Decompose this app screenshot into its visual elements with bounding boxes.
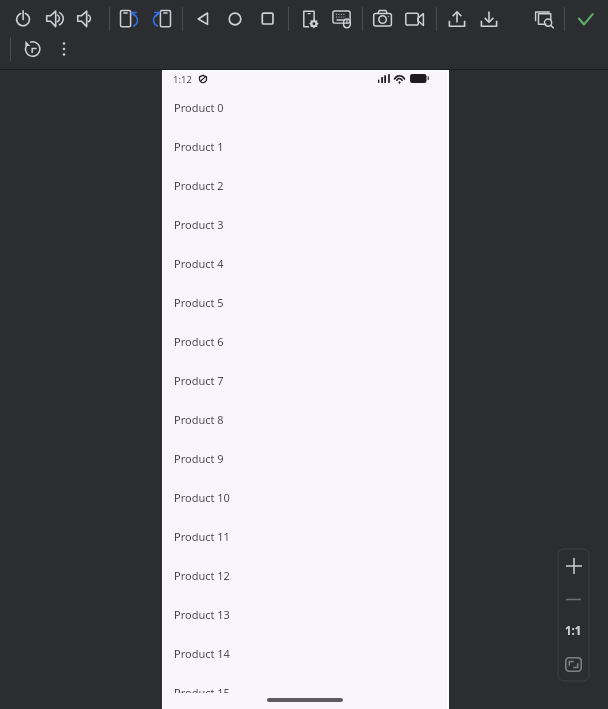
staticText: Product 10 <box>174 490 230 505</box>
staticText: Product 1 <box>174 139 224 154</box>
button[interactable]: Product 15 <box>163 673 447 693</box>
button[interactable]: Power <box>12 9 34 31</box>
staticText: Product 14 <box>174 646 230 661</box>
button[interactable]: Product 13 <box>163 595 447 634</box>
button[interactable]: History <box>21 38 43 60</box>
button[interactable]: Home <box>224 9 246 31</box>
button[interactable]: Product 0 <box>163 88 447 127</box>
button[interactable]: Product 6 <box>163 322 447 361</box>
staticText: Product 7 <box>174 373 224 388</box>
button[interactable]: Record screen <box>404 9 426 31</box>
button[interactable]: Product 8 <box>163 400 447 439</box>
button[interactable]: Inspect layout <box>535 9 557 31</box>
button[interactable]: Confirm <box>575 9 597 31</box>
button[interactable]: Product 12 <box>163 556 447 595</box>
button[interactable]: Rotate right <box>151 9 173 31</box>
staticText: Product 4 <box>174 256 224 271</box>
button[interactable]: Rotate left <box>118 9 140 31</box>
button[interactable]: Product 3 <box>163 205 447 244</box>
button[interactable]: Upload file <box>446 9 468 31</box>
staticText: Product 2 <box>174 178 224 193</box>
button[interactable]: Keyboard and mouse <box>331 9 353 31</box>
button[interactable]: Overview <box>256 9 278 31</box>
button[interactable]: Fit to window <box>558 647 589 681</box>
staticText: Product 9 <box>174 451 224 466</box>
button[interactable]: Product 7 <box>163 361 447 400</box>
button[interactable]: Product 4 <box>163 244 447 283</box>
staticText: Product 13 <box>174 607 230 622</box>
button[interactable]: More options <box>53 38 75 60</box>
staticText: Product 11 <box>174 529 230 544</box>
button[interactable]: Zoom in <box>558 549 589 583</box>
button[interactable]: Zoom out <box>558 583 589 615</box>
button[interactable]: Volume up <box>44 9 66 31</box>
button[interactable]: Product 9 <box>163 439 447 478</box>
staticText: Product 5 <box>174 295 224 310</box>
button[interactable]: Product 14 <box>163 634 447 673</box>
button[interactable]: Product 2 <box>163 166 447 205</box>
button[interactable]: Product 1 <box>163 127 447 166</box>
staticText: Product 6 <box>174 334 224 349</box>
button[interactable]: Device settings <box>300 9 322 31</box>
button[interactable]: Product 11 <box>163 517 447 556</box>
staticText: Product 3 <box>174 217 224 232</box>
staticText: 1:12 <box>173 73 192 86</box>
button[interactable]: Download file <box>478 9 500 31</box>
staticText: Product 15 <box>174 685 230 693</box>
button[interactable]: Volume down <box>75 9 97 31</box>
button[interactable]: Product 5 <box>163 283 447 322</box>
button[interactable]: Product 10 <box>163 478 447 517</box>
staticText: Product 12 <box>174 568 230 583</box>
staticText: Product 0 <box>174 100 224 115</box>
staticText: Product 8 <box>174 412 224 427</box>
staticText: 1:1 <box>565 623 582 639</box>
button[interactable]: Back <box>193 9 215 31</box>
button[interactable]: 1:1 <box>558 615 589 647</box>
button[interactable]: Take screenshot <box>372 9 394 31</box>
